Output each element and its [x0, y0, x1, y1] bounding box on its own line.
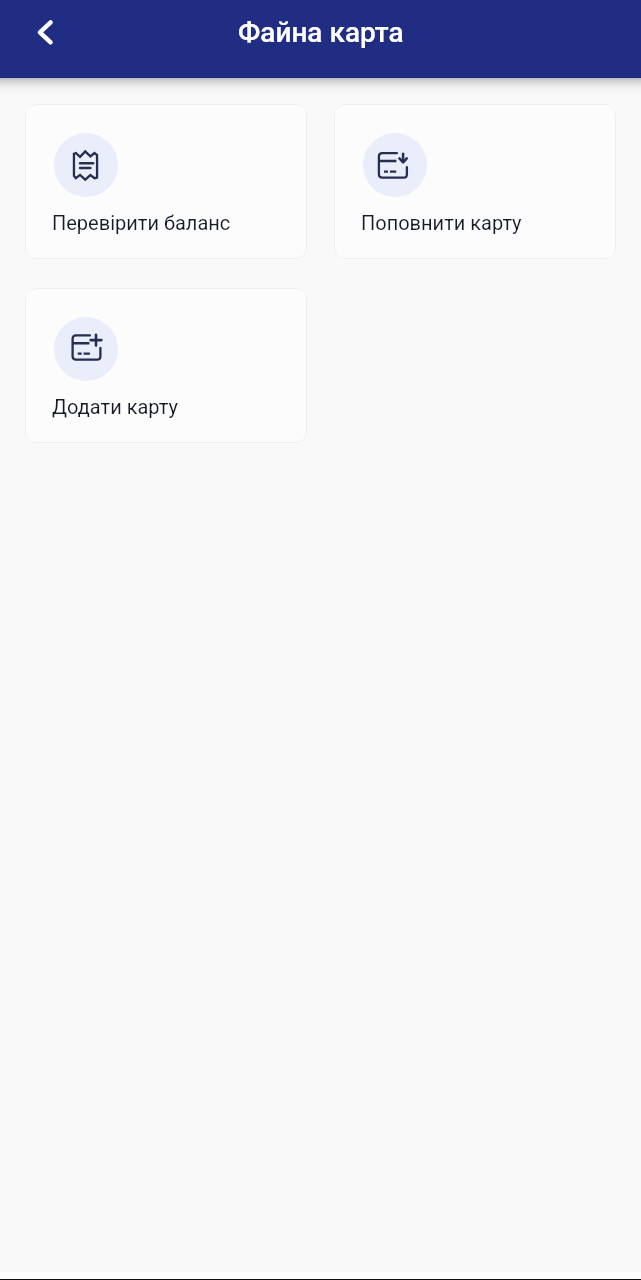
staticText: Файна карта [238, 16, 404, 49]
button[interactable]: Поповнити карту [334, 104, 616, 259]
button[interactable]: Перевірити баланс [25, 104, 307, 259]
button[interactable]: Додати карту [25, 288, 307, 443]
button[interactable]: Back [19, 6, 71, 58]
staticText: Перевірити баланс [52, 211, 231, 234]
staticText: Додати карту [52, 395, 178, 418]
staticText: Поповнити карту [361, 211, 522, 234]
